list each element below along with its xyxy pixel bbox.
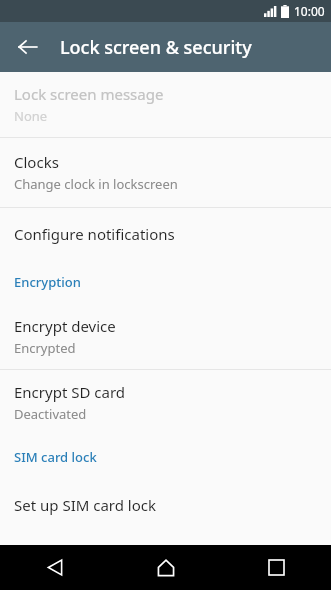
staticText: 10:00 [294, 3, 325, 19]
staticText: Configure notifications [14, 224, 175, 244]
button[interactable]: Configure notifications [0, 208, 331, 260]
staticText: Set up SIM card lock [14, 495, 157, 515]
staticText: Encryption [14, 273, 81, 291]
staticText: Encrypt device [14, 316, 116, 336]
button[interactable]: Home [111, 545, 221, 590]
staticText: Lock screen & security [60, 35, 252, 60]
staticText: Clocks [14, 152, 59, 172]
button[interactable]: Recent apps [221, 545, 331, 590]
staticText: None [14, 107, 48, 125]
staticText: Change clock in lockscreen [14, 175, 178, 193]
staticText: Encrypted [14, 339, 76, 357]
staticText: SIM card lock [14, 448, 97, 466]
button[interactable]: Back [0, 545, 111, 590]
staticText: Encrypt SD card [14, 382, 126, 402]
button[interactable]: Back [6, 25, 50, 69]
button[interactable]: Encrypt device [0, 304, 331, 369]
button[interactable]: Encrypt SD card [0, 370, 331, 435]
button[interactable]: Lock screen message [0, 72, 331, 137]
button[interactable]: Clocks [0, 138, 331, 207]
button[interactable]: Set up SIM card lock [0, 479, 331, 531]
staticText: Lock screen message [14, 84, 164, 104]
staticText: Deactivated [14, 405, 87, 423]
